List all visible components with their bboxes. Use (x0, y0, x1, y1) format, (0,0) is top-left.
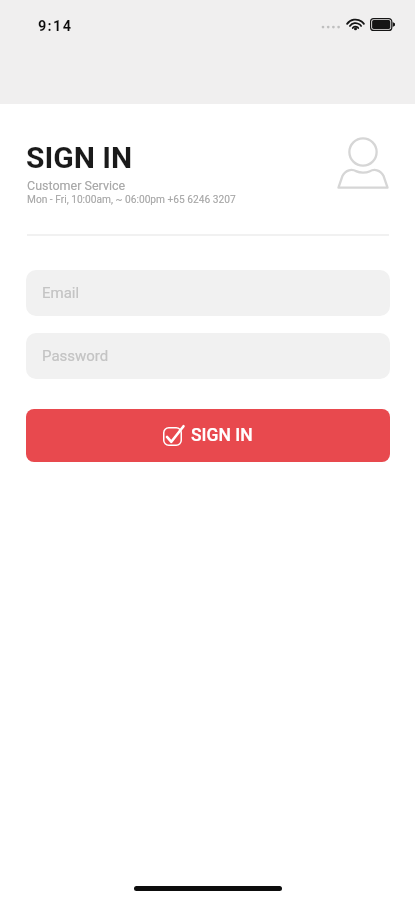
button[interactable]: Email (26, 270, 390, 316)
staticText: SIGN IN (191, 425, 253, 446)
staticText: Mon - Fri, 10:00am, ~ 06:00pm +65 6246 3… (27, 194, 236, 206)
staticText: 9:14 (38, 18, 73, 35)
staticText: Password (42, 347, 109, 365)
button[interactable]: Password (26, 333, 390, 379)
staticText: Customer Service (27, 178, 126, 193)
staticText: Email (42, 284, 80, 302)
staticText: SIGN IN (26, 140, 133, 175)
button[interactable]: Profile (334, 134, 392, 192)
button[interactable]: SIGN IN (26, 409, 390, 462)
